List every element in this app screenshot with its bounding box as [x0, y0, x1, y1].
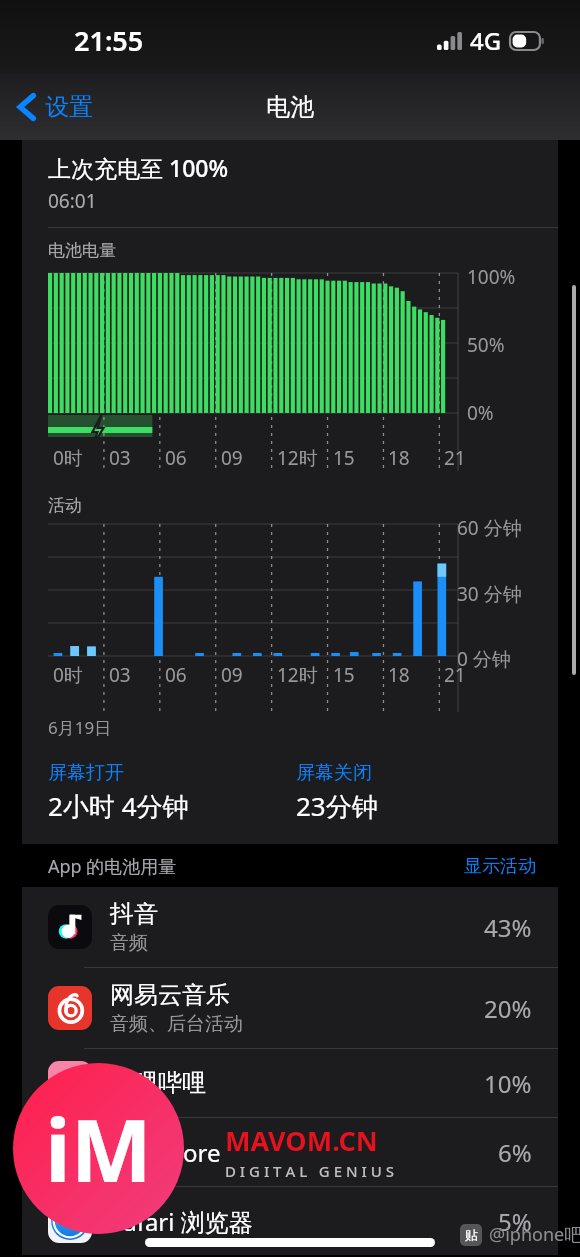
staticText: 5% — [498, 1205, 532, 1238]
staticText: 50% — [467, 332, 505, 358]
staticText: 电池 — [266, 92, 314, 122]
staticText: 6% — [498, 1136, 532, 1169]
staticText: 43% — [484, 911, 532, 944]
staticText: App Store — [110, 1136, 221, 1169]
staticText: 12时 — [277, 445, 318, 471]
staticText: 03 — [109, 445, 131, 471]
staticText: 03 — [109, 662, 131, 688]
staticText: 6月19日 — [48, 716, 112, 739]
staticText: 20% — [484, 992, 532, 1025]
staticText: 抖音 — [110, 899, 158, 929]
staticText: 09 — [221, 445, 243, 471]
staticText: 0% — [467, 400, 494, 426]
staticText: 活动 — [48, 495, 82, 516]
staticText: 30 分钟 — [457, 581, 522, 607]
staticText: 21:55 — [74, 22, 144, 59]
staticText: 10% — [484, 1067, 532, 1100]
staticText: 音频 — [110, 931, 148, 955]
staticText: 15 — [333, 445, 355, 471]
staticText: 设置 — [45, 92, 93, 122]
staticText: 0 分钟 — [457, 646, 511, 672]
button[interactable]: 显示活动 — [464, 855, 536, 878]
staticText: MAVOM.CN — [225, 1122, 378, 1159]
staticText: 上次充电至 100% — [48, 152, 229, 183]
staticText: 60 分钟 — [457, 515, 522, 541]
staticText: 23分钟 — [296, 788, 378, 824]
staticText: 09 — [221, 662, 243, 688]
staticText: 哔哩哔哩 — [110, 1068, 206, 1098]
button[interactable]: 抖音 — [22, 887, 558, 967]
staticText: 显示活动 — [464, 855, 536, 878]
button[interactable]: App Store — [22, 1118, 558, 1186]
staticText: 音频、后台活动 — [110, 1012, 243, 1036]
staticText: 12时 — [277, 662, 318, 688]
button[interactable]: 网易云音乐 — [22, 968, 558, 1048]
staticText: 0时 — [53, 445, 83, 471]
button[interactable]: 哔哩哔哩 — [22, 1049, 558, 1117]
staticText: 贴 — [465, 1227, 478, 1243]
button[interactable]: Safari 浏览器 — [22, 1187, 558, 1255]
staticText: iM — [45, 1090, 152, 1207]
staticText: 电池电量 — [48, 240, 116, 261]
staticText: 2小时 4分钟 — [48, 788, 189, 824]
staticText: App 的电池用量 — [48, 854, 177, 879]
staticText: 06 — [165, 445, 187, 471]
staticText: 15 — [333, 662, 355, 688]
staticText: 屏幕关闭 — [296, 761, 372, 785]
staticText: 0时 — [53, 662, 83, 688]
staticText: 21 — [444, 662, 466, 688]
staticText: 06 — [165, 662, 187, 688]
staticText: 屏幕打开 — [48, 761, 124, 785]
button[interactable]: 设置 — [14, 88, 97, 126]
staticText: 18 — [388, 445, 410, 471]
staticText: @iphone吧 — [489, 1222, 580, 1247]
staticText: 4G — [470, 24, 502, 57]
staticText: 06:01 — [48, 188, 97, 214]
staticText: Safari 浏览器 — [110, 1205, 253, 1238]
staticText: D I G I T A L G E N I U S — [225, 1161, 394, 1181]
staticText: 18 — [388, 662, 410, 688]
staticText: 21 — [444, 445, 466, 471]
staticText: 100% — [467, 264, 516, 290]
staticText: 网易云音乐 — [110, 980, 230, 1010]
